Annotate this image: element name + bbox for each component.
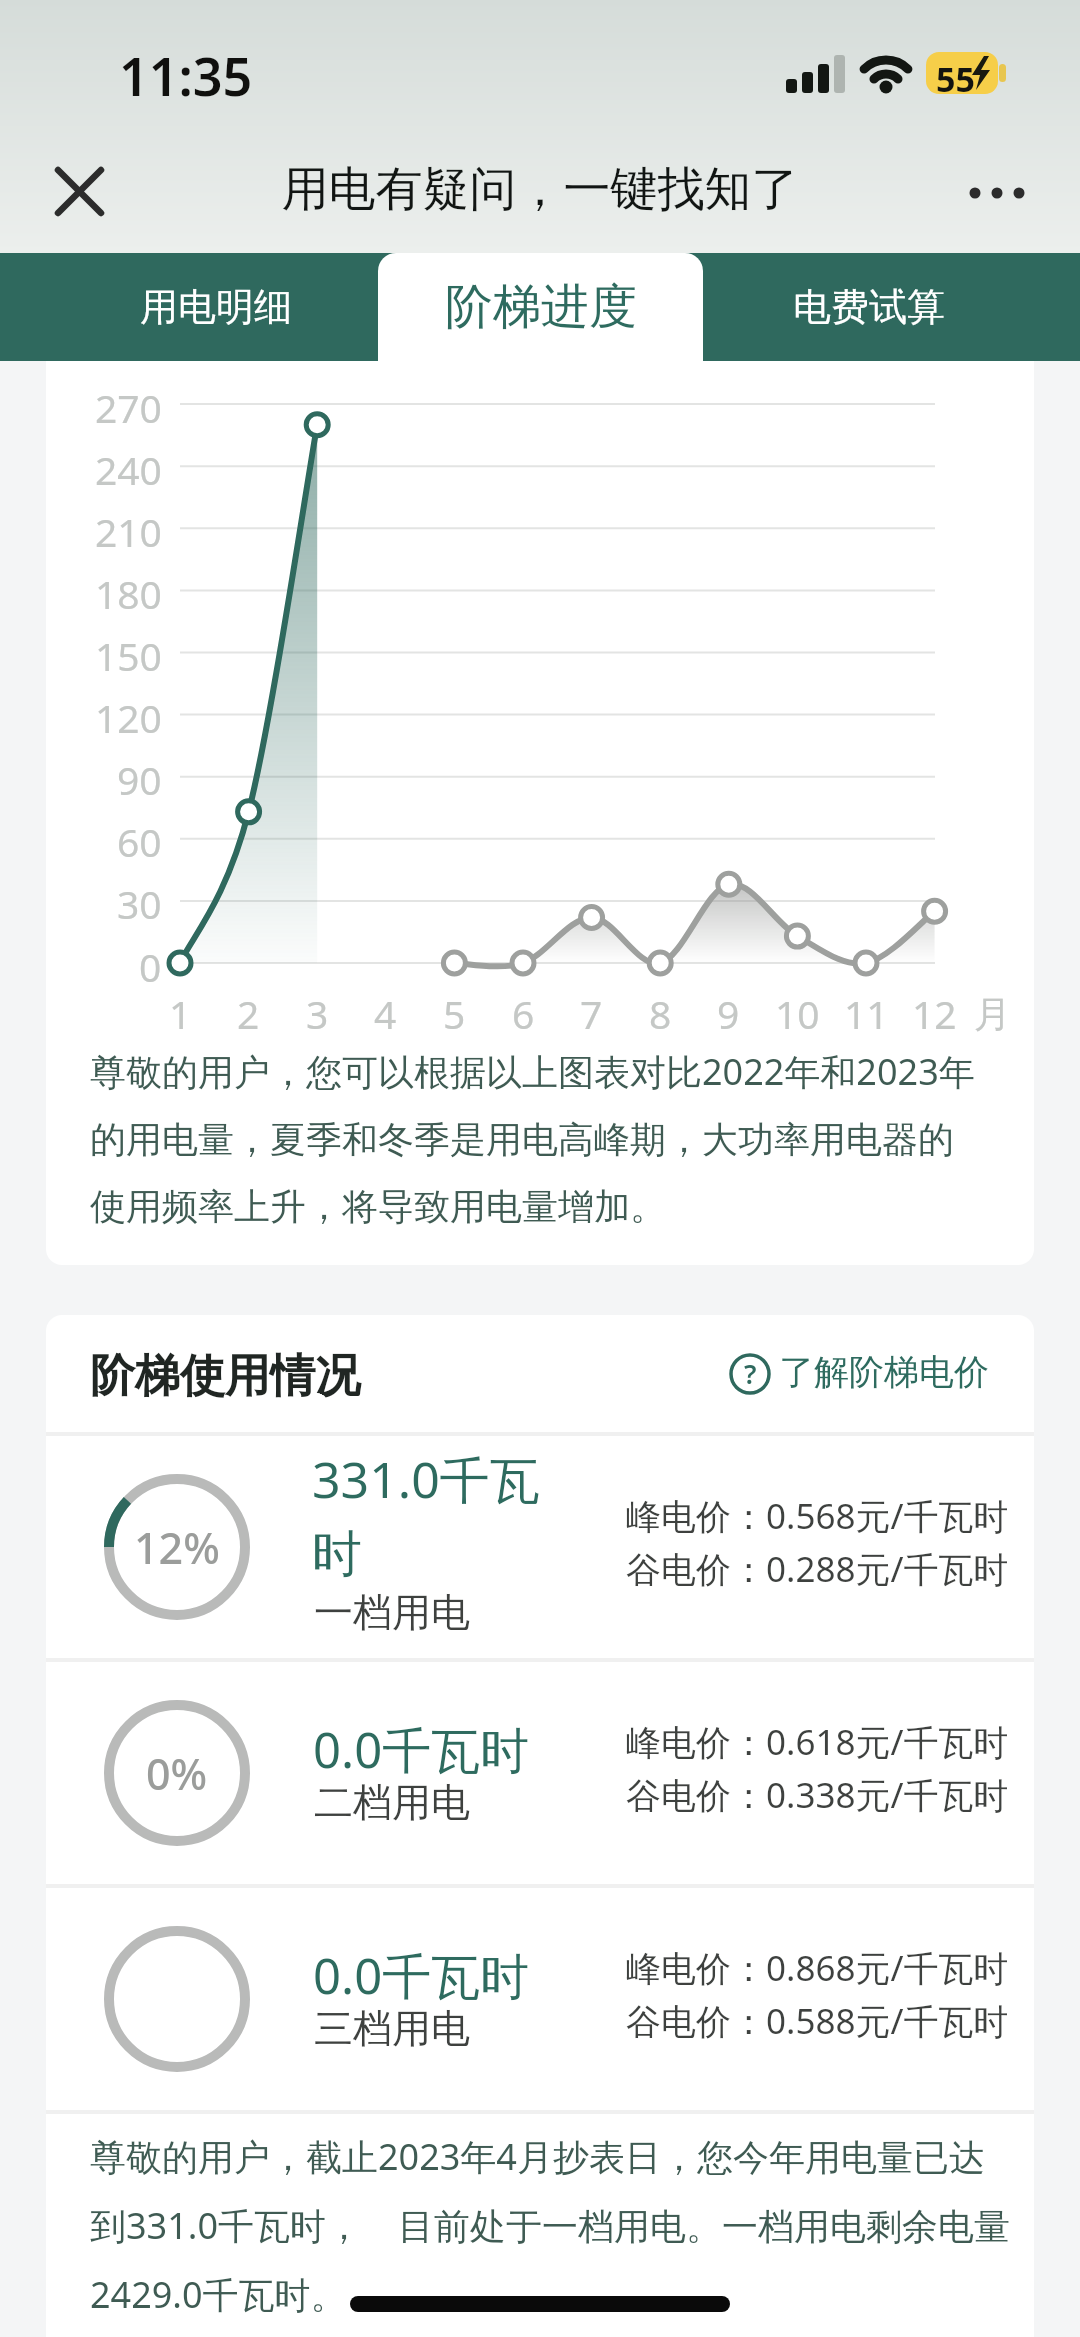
staticText: 3 bbox=[306, 987, 329, 1033]
staticText: 用电有疑问，一键找知了 bbox=[0, 160, 1080, 219]
button[interactable]: 12% bbox=[46, 1436, 1034, 1658]
staticText: 90 bbox=[117, 753, 162, 799]
staticText: 9 bbox=[717, 987, 740, 1033]
staticText: 了解阶梯电价 bbox=[779, 1350, 989, 1394]
staticText: 180 bbox=[95, 567, 162, 613]
staticText: 谷电价：0.338元/千瓦时 bbox=[626, 1771, 1009, 1819]
staticText: 0.0千瓦时 bbox=[313, 1942, 530, 2009]
staticText: 峰电价：0.868元/千瓦时 bbox=[626, 1944, 1009, 1992]
button[interactable]: 用电明细 bbox=[53, 253, 378, 361]
staticText: 月 bbox=[974, 991, 1011, 1038]
staticText: 阶梯进度 bbox=[445, 277, 637, 337]
staticText: 4 bbox=[374, 987, 397, 1033]
staticText: 210 bbox=[95, 505, 162, 551]
staticText: 二档用电 bbox=[314, 1778, 470, 1827]
staticText: 55 bbox=[936, 56, 975, 102]
staticText: 150 bbox=[95, 629, 162, 675]
staticText: 一档用电 bbox=[314, 1588, 470, 1637]
button[interactable]: 电费试算 bbox=[703, 253, 1035, 361]
staticText: 1 bbox=[169, 987, 192, 1033]
button[interactable]: ? bbox=[726, 1348, 989, 1396]
staticText: 电费试算 bbox=[793, 283, 945, 331]
staticText: 11:35 bbox=[119, 40, 253, 111]
staticText: 0% bbox=[146, 1744, 208, 1803]
button[interactable] bbox=[44, 156, 114, 226]
staticText: 5 bbox=[443, 987, 466, 1033]
staticText: 30 bbox=[117, 877, 162, 923]
button[interactable]: 0.0千瓦时 bbox=[46, 1888, 1034, 2110]
staticText: 331.0千瓦时 bbox=[312, 1445, 552, 1586]
staticText: 2 bbox=[237, 987, 260, 1033]
staticText: 谷电价：0.288元/千瓦时 bbox=[626, 1545, 1009, 1593]
staticText: 240 bbox=[95, 443, 162, 489]
staticText: 7 bbox=[580, 987, 603, 1033]
staticText: 尊敬的用户，截止2023年4月抄表日，您今年用电量已达 到331.0千瓦时， 目… bbox=[90, 2132, 1034, 2318]
staticText: 峰电价：0.618元/千瓦时 bbox=[626, 1718, 1009, 1766]
staticText: 11 bbox=[844, 987, 889, 1033]
staticText: 12% bbox=[134, 1518, 220, 1577]
staticText: 用电明细 bbox=[140, 283, 292, 331]
staticText: 60 bbox=[117, 815, 162, 861]
staticText: 120 bbox=[95, 691, 162, 737]
staticText: 0 bbox=[139, 940, 162, 986]
staticText: 阶梯使用情况 bbox=[90, 1348, 360, 1405]
button[interactable] bbox=[955, 165, 1045, 215]
staticText: ? bbox=[744, 1355, 757, 1392]
staticText: 8 bbox=[649, 987, 672, 1033]
button[interactable]: 阶梯进度 bbox=[378, 253, 703, 361]
staticText: 谷电价：0.588元/千瓦时 bbox=[626, 1997, 1009, 2045]
staticText: 三档用电 bbox=[314, 2004, 470, 2053]
button[interactable]: 0% bbox=[46, 1662, 1034, 1884]
staticText: 10 bbox=[775, 987, 820, 1033]
staticText: 270 bbox=[95, 381, 162, 427]
staticText: 12 bbox=[912, 987, 957, 1033]
staticText: 0.0千瓦时 bbox=[313, 1716, 530, 1783]
staticText: 峰电价：0.568元/千瓦时 bbox=[626, 1492, 1009, 1540]
staticText: 6 bbox=[512, 987, 535, 1033]
staticText: 尊敬的用户，您可以根据以上图表对比2022年和2023年 的用电量，夏季和冬季是… bbox=[90, 1047, 1030, 1230]
